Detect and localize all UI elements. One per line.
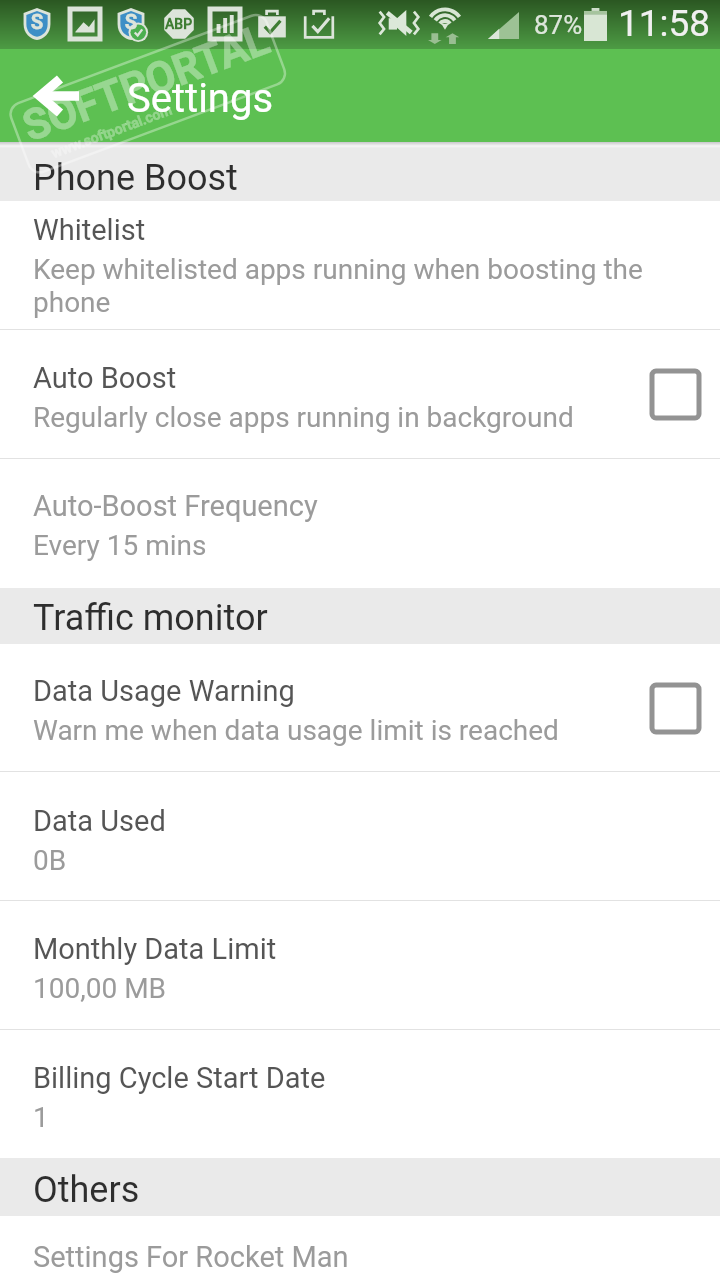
button[interactable]: Auto Boost — [0, 330, 720, 459]
staticText: 1 — [33, 1101, 49, 1134]
staticText: www.softportal.com — [49, 101, 174, 161]
staticText: S — [125, 10, 138, 33]
staticText: 100,00 MB — [33, 972, 167, 1005]
staticText: S — [31, 10, 44, 33]
button[interactable]: Back — [26, 75, 100, 119]
staticText: Billing Cycle Start Date — [33, 1061, 326, 1095]
staticText: Every 15 mins — [33, 529, 207, 562]
button[interactable]: Billing Cycle Start Date — [0, 1030, 720, 1158]
staticText: Auto Boost — [33, 361, 177, 395]
staticText: Settings — [127, 75, 274, 122]
staticText: ABP — [165, 16, 193, 32]
button[interactable]: Monthly Data Limit — [0, 901, 720, 1030]
button[interactable]: Settings For Rocket Man — [0, 1216, 720, 1280]
staticText: Monthly Data Limit — [33, 932, 277, 966]
staticText: Warn me when data usage limit is reached — [33, 714, 559, 747]
staticText: 0B — [33, 844, 67, 877]
staticText: 11:58 — [618, 2, 711, 45]
staticText: Traffic monitor — [33, 597, 268, 639]
button[interactable]: Data Usage Warning — [0, 644, 720, 772]
staticText: Others — [33, 1169, 140, 1211]
staticText: SOFTPORTAL — [16, 14, 276, 151]
staticText: Auto-Boost Frequency — [33, 489, 318, 523]
staticText: Phone Boost — [33, 157, 238, 199]
button[interactable]: Auto-Boost Frequency — [0, 459, 720, 588]
staticText: Data Used — [33, 804, 166, 838]
staticText: 87% — [534, 10, 583, 40]
staticText: Settings For Rocket Man — [33, 1240, 349, 1274]
staticText: Regularly close apps running in backgrou… — [33, 401, 574, 434]
staticText: Data Usage Warning — [33, 674, 295, 708]
staticText: Keep whitelisted apps running when boost… — [33, 253, 643, 319]
button[interactable]: Whitelist — [0, 201, 720, 330]
staticText: Whitelist — [33, 213, 146, 247]
button[interactable]: Data Used — [0, 772, 720, 901]
